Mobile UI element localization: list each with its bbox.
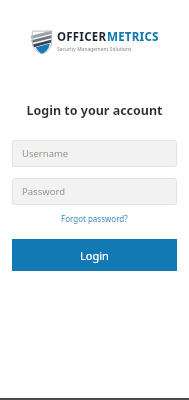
staticText: Login [80, 248, 109, 263]
staticText: Security Management Solutions [57, 46, 132, 53]
button[interactable]: Username [12, 140, 177, 167]
staticText: Forgot password? [61, 213, 128, 224]
staticText: METRICS [107, 29, 159, 45]
staticText: Password [22, 185, 65, 198]
button[interactable]: Login [12, 239, 177, 271]
button[interactable]: Password [12, 178, 177, 205]
staticText: OFFICER [57, 29, 107, 45]
staticText: Username [22, 147, 69, 160]
button[interactable]: Forgot password? [57, 212, 132, 225]
staticText: Login to your account [26, 102, 163, 119]
